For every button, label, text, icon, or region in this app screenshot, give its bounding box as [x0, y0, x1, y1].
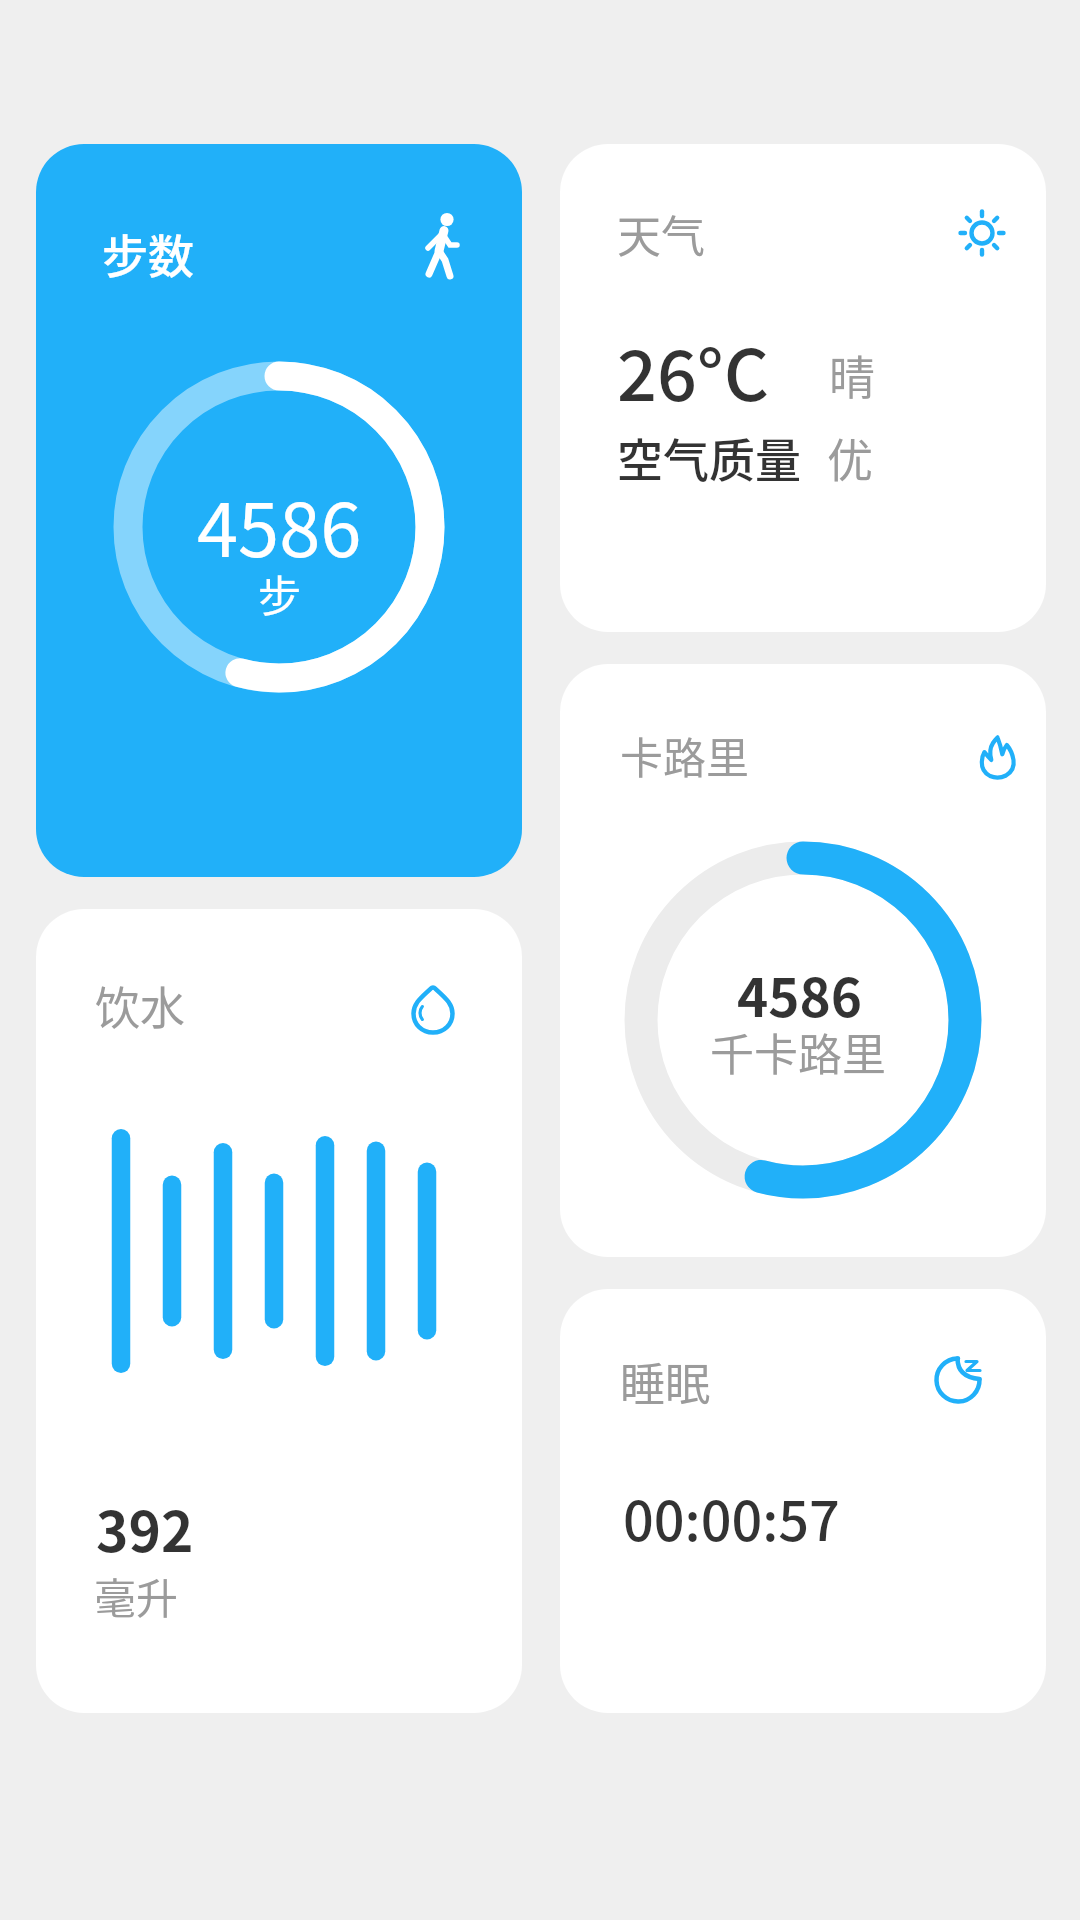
staticText: 饮水: [95, 973, 186, 1038]
button[interactable]: 睡眠: [560, 1289, 1046, 1713]
staticText: 空气质量: [617, 424, 801, 491]
button[interactable]: 饮水: [36, 909, 522, 1713]
button[interactable]: 天气: [560, 144, 1046, 632]
staticText: 千卡路里: [710, 1020, 886, 1084]
staticText: 00:00:57: [623, 1478, 840, 1556]
button[interactable]: 步数: [36, 144, 522, 877]
button[interactable]: 卡路里: [560, 664, 1046, 1257]
staticText: 步: [258, 562, 301, 624]
staticText: 优: [827, 424, 873, 491]
staticText: 392: [96, 1488, 194, 1568]
staticText: 天气: [617, 202, 705, 266]
staticText: 26°C: [617, 320, 769, 421]
staticText: 晴: [829, 341, 875, 408]
staticText: 睡眠: [620, 1349, 711, 1414]
staticText: 毫升: [94, 1565, 179, 1626]
staticText: 4586: [197, 471, 362, 578]
staticText: 步数: [102, 220, 194, 287]
staticText: 4586: [737, 956, 863, 1033]
staticText: 卡路里: [620, 724, 749, 786]
